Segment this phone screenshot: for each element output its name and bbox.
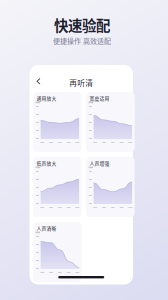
button[interactable]: 宽度适用 <box>86 92 135 152</box>
staticText: 人声增强 <box>89 160 109 167</box>
button[interactable]: Back <box>33 74 44 88</box>
staticText: 低声放大 <box>36 160 56 167</box>
button[interactable]: 通用放大 <box>33 92 82 152</box>
staticText: 再听清 <box>69 77 93 88</box>
staticText: 人声清晰 <box>36 225 56 232</box>
staticText: 便捷操作 高效适配 <box>53 36 111 46</box>
button[interactable]: 低声放大 <box>33 157 82 217</box>
staticText: 宽度适用 <box>89 95 109 102</box>
staticText: 快速验配 <box>54 14 110 35</box>
button[interactable]: 人声清晰 <box>33 222 82 282</box>
button[interactable]: 人声增强 <box>86 157 135 217</box>
staticText: 通用放大 <box>36 95 56 102</box>
